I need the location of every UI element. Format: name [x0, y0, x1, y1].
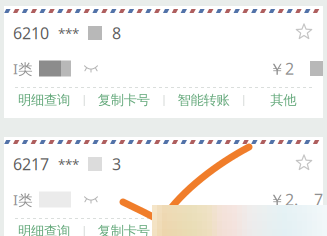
staticText: 复制卡号	[98, 223, 150, 236]
button[interactable]: 复制卡号	[84, 89, 164, 111]
button[interactable]: Show balance	[82, 61, 100, 75]
staticText: 智能转账	[177, 92, 229, 108]
button[interactable]: 其他	[243, 220, 323, 236]
staticText: 8	[112, 22, 121, 44]
staticText: 复制卡号	[98, 92, 150, 108]
button[interactable]: Favourite	[293, 21, 315, 43]
button[interactable]: 其他	[243, 89, 323, 111]
staticText: ￥2	[269, 58, 294, 79]
staticText: 6210	[13, 22, 49, 44]
button[interactable]: Favourite	[293, 152, 315, 174]
staticText: I类	[13, 59, 33, 78]
button[interactable]: 明细查询	[4, 89, 84, 111]
staticText: 7	[314, 189, 323, 210]
staticText: 6217	[13, 153, 49, 175]
staticText: 其他	[270, 92, 296, 108]
button[interactable]: 智能转账	[163, 220, 243, 236]
staticText: 明细查询	[18, 223, 70, 236]
button[interactable]: 明细查询	[4, 220, 84, 236]
staticText: 3	[112, 153, 121, 175]
staticText: 明细查询	[18, 92, 70, 108]
staticText: ***	[58, 24, 79, 42]
button[interactable]: 复制卡号	[84, 220, 164, 236]
staticText: 智能转账	[177, 223, 229, 236]
staticText: ￥2.	[269, 189, 298, 210]
staticText: I类	[13, 190, 33, 209]
button[interactable]: Show balance	[82, 192, 100, 206]
staticText: ***	[58, 155, 79, 173]
button[interactable]: 智能转账	[163, 89, 243, 111]
